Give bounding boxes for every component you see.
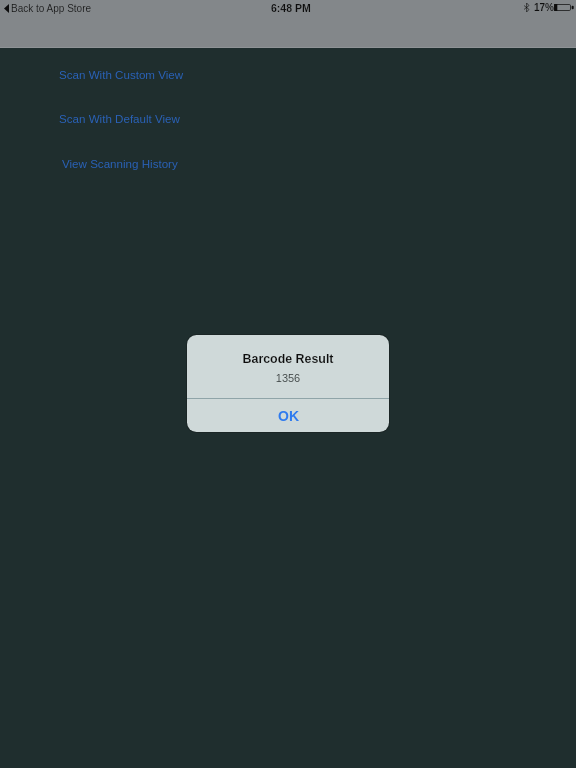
other: Bluetooth on [524, 3, 529, 12]
staticText: Scan With Custom View [59, 68, 184, 81]
other: Battery 17 percent [554, 4, 574, 11]
button[interactable]: Back to App Store [3, 0, 92, 17]
button[interactable]: Scan With Default View [47, 101, 180, 135]
staticText: 1356 [187, 372, 389, 384]
button[interactable]: View Scanning History [50, 146, 178, 180]
button[interactable]: Scan With Custom View [47, 57, 184, 91]
staticText: 17% [534, 2, 555, 13]
staticText: Back to App Store [11, 3, 92, 14]
staticText: Scan With Default View [59, 112, 180, 125]
button[interactable]: OK [187, 399, 389, 432]
staticText: OK [278, 408, 299, 424]
staticText: View Scanning History [62, 157, 178, 170]
staticText: Barcode Result [187, 352, 389, 366]
staticText: 6:48 PM [271, 2, 311, 14]
